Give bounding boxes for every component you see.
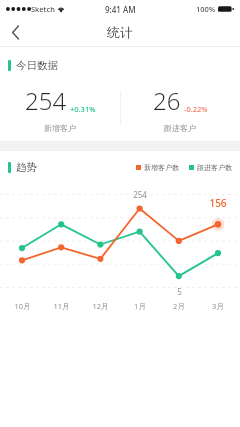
staticText: 新增客户 bbox=[44, 123, 76, 133]
button[interactable]: 新增客户数 bbox=[136, 163, 179, 172]
staticText: 5 bbox=[177, 286, 182, 297]
staticText: 跟进客户 bbox=[164, 123, 196, 133]
button[interactable]: 26 bbox=[120, 77, 240, 139]
staticText: 跟进客户数 bbox=[197, 163, 232, 172]
staticText: Sketch bbox=[31, 4, 55, 14]
staticText: 9:41 AM bbox=[105, 4, 136, 15]
staticText: 100% bbox=[196, 4, 216, 14]
staticText: 今日数据 bbox=[16, 59, 58, 72]
staticText: +0.31% bbox=[70, 104, 96, 114]
staticText: 254 bbox=[25, 84, 67, 117]
staticText: 10月 bbox=[14, 301, 31, 311]
staticText: 1月 bbox=[134, 301, 146, 311]
staticText: 12月 bbox=[92, 301, 109, 311]
staticText: 趋势 bbox=[16, 161, 37, 174]
staticText: 3月 bbox=[212, 301, 224, 311]
staticText: -0.22% bbox=[184, 104, 208, 114]
button[interactable]: 跟进客户数 bbox=[189, 163, 232, 172]
staticText: 2月 bbox=[173, 301, 185, 311]
staticText: 156 bbox=[209, 196, 227, 210]
staticText: 26 bbox=[153, 84, 181, 117]
staticText: 统计 bbox=[107, 24, 133, 40]
staticText: 新增客户数 bbox=[144, 163, 179, 172]
button[interactable]: Back bbox=[0, 18, 30, 46]
staticText: 11月 bbox=[53, 301, 70, 311]
button[interactable]: 254 bbox=[0, 77, 120, 139]
staticText: 254 bbox=[133, 189, 147, 200]
